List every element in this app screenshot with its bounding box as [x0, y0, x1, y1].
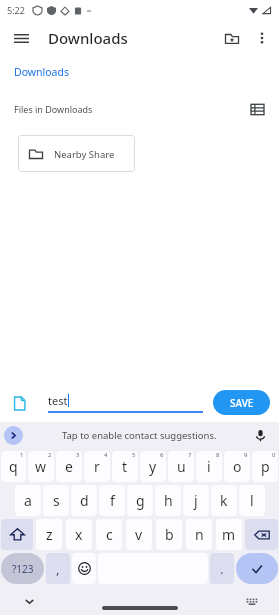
button[interactable]: o [224, 451, 250, 482]
button[interactable]: Menu [6, 23, 36, 53]
button[interactable]: . [210, 553, 234, 584]
staticText: w [35, 457, 47, 476]
staticText: b [165, 525, 174, 544]
button[interactable]: m [216, 519, 242, 550]
staticText: m [222, 525, 236, 544]
staticText: c [106, 525, 113, 544]
staticText: 5 [132, 451, 136, 459]
staticText: 3 [76, 451, 80, 459]
button[interactable]: h [155, 485, 181, 516]
staticText: v [135, 525, 143, 544]
button[interactable]: New folder [217, 23, 247, 53]
button[interactable]: w [28, 451, 54, 482]
button[interactable]: z [36, 519, 62, 550]
staticText: h [164, 491, 173, 510]
button[interactable]: l [239, 485, 265, 516]
button[interactable]: Tap to enable contact suggestions. [62, 429, 217, 442]
staticText: d [80, 491, 89, 510]
button[interactable]: q [1, 451, 26, 482]
staticText: n [195, 525, 204, 544]
staticText: 9 [244, 451, 248, 459]
staticText: g [136, 491, 145, 510]
button[interactable]: Switch keyboard [241, 590, 263, 612]
staticText: j [194, 491, 198, 510]
staticText: s [53, 491, 60, 510]
button[interactable]: p [252, 451, 278, 482]
button[interactable]: r [84, 451, 110, 482]
staticText: . [220, 560, 224, 578]
staticText: 7 [188, 451, 192, 459]
staticText: ?123 [12, 562, 34, 576]
button[interactable]: v [126, 519, 152, 550]
staticText: e [65, 457, 73, 476]
button[interactable]: s [43, 485, 69, 516]
staticText: z [46, 525, 53, 544]
button[interactable]: c [96, 519, 122, 550]
button[interactable]: Downloads [14, 65, 69, 79]
button[interactable]: Enter [236, 553, 278, 584]
staticText: test [48, 393, 68, 408]
staticText: 2 [48, 451, 52, 459]
staticText: l [250, 491, 254, 510]
button[interactable]: n [186, 519, 212, 550]
staticText: o [233, 457, 242, 476]
staticText: u [177, 457, 186, 476]
button[interactable]: Emoji [72, 553, 96, 584]
staticText: SAVE [230, 396, 254, 410]
button[interactable]: x [66, 519, 92, 550]
button[interactable]: a [15, 485, 41, 516]
staticText: , [56, 560, 60, 578]
button[interactable]: Voice input [249, 424, 271, 446]
button[interactable]: e [56, 451, 82, 482]
staticText: a [24, 491, 32, 510]
staticText: 1 [20, 451, 24, 459]
button[interactable]: j [183, 485, 209, 516]
staticText: 4 [104, 451, 108, 459]
staticText: 6 [160, 451, 164, 459]
button[interactable]: SAVE [213, 390, 270, 415]
staticText: 0 [272, 451, 276, 459]
button[interactable]: List view [245, 97, 269, 121]
button[interactable]: t [112, 451, 138, 482]
staticText: x [75, 525, 83, 544]
staticText: Files in Downloads [14, 103, 93, 115]
button[interactable]: Hide keyboard [18, 590, 40, 612]
staticText: 8 [216, 451, 220, 459]
staticText: k [220, 491, 228, 510]
button[interactable]: File type [6, 390, 32, 416]
button[interactable]: Nearby Share [18, 135, 135, 172]
button[interactable]: d [71, 485, 97, 516]
button[interactable]: u [168, 451, 194, 482]
staticText: i [207, 457, 211, 476]
button[interactable]: i [196, 451, 222, 482]
button[interactable]: Expand suggestions [4, 426, 23, 445]
staticText: 5:22 [7, 4, 25, 16]
button[interactable]: g [127, 485, 153, 516]
staticText: r [94, 457, 100, 476]
staticText: Nearby Share [54, 148, 115, 161]
staticText: p [261, 457, 270, 476]
button[interactable]: k [211, 485, 237, 516]
button[interactable]: Shift [1, 519, 33, 550]
button[interactable]: Backspace [245, 519, 278, 550]
staticText: y [149, 457, 157, 476]
button[interactable]: f [99, 485, 125, 516]
staticText: t [122, 457, 128, 476]
button[interactable]: More options [247, 23, 277, 53]
button[interactable]: y [140, 451, 166, 482]
button[interactable]: ?123 [1, 553, 44, 584]
button[interactable]: , [46, 553, 70, 584]
staticText: Downloads [48, 28, 128, 48]
button[interactable]: b [156, 519, 182, 550]
staticText: f [110, 491, 115, 510]
staticText: q [9, 457, 18, 476]
